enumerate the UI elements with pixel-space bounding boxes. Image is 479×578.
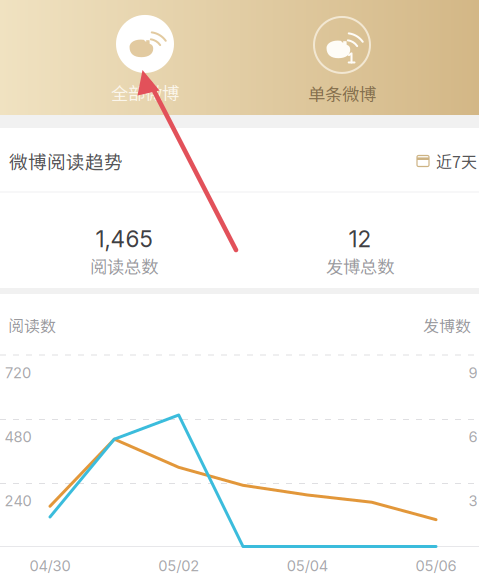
button[interactable]: 单条微博 <box>308 16 376 106</box>
staticText: 近7天 <box>436 149 477 173</box>
staticText: 发博数 <box>423 313 471 337</box>
staticText: 12 <box>348 225 371 253</box>
staticText: 240 <box>4 492 31 510</box>
staticText: 04/30 <box>29 557 70 575</box>
staticText: 05/04 <box>287 557 328 575</box>
staticText: 全部微博 <box>111 80 179 105</box>
staticText: 720 <box>5 364 31 382</box>
staticText: 3 <box>468 492 477 510</box>
button[interactable]: 全部微博 <box>111 15 179 105</box>
staticText: 发博总数 <box>326 253 394 279</box>
staticText: 05/02 <box>158 557 199 575</box>
staticText: 单条微博 <box>308 81 376 106</box>
staticText: 6 <box>468 428 477 446</box>
button[interactable]: 近7天 <box>417 135 477 187</box>
staticText: 阅读总数 <box>90 253 158 279</box>
staticText: 9 <box>468 364 477 382</box>
staticText: 阅读数 <box>8 313 56 337</box>
staticText: 微博阅读趋势 <box>9 147 123 174</box>
staticText: 480 <box>4 428 31 446</box>
staticText: 1,465 <box>95 225 152 253</box>
staticText: 05/06 <box>415 557 456 575</box>
